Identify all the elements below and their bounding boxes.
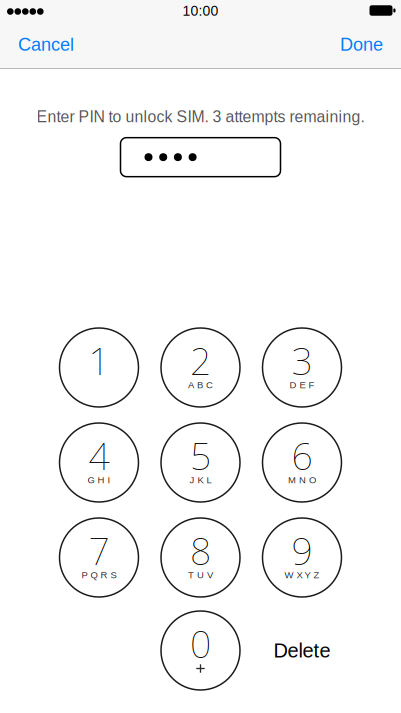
button[interactable]: 8 [161,518,240,597]
button[interactable]: 3 [262,328,341,407]
staticText: P Q R S [81,570,116,580]
button[interactable]: 9 [262,518,341,597]
staticText: Cancel [18,34,74,55]
staticText: D E F [289,380,314,390]
button[interactable]: 7 [59,518,138,597]
staticText: 0 [190,619,211,668]
staticText: W X Y Z [284,570,319,580]
staticText: 8 [190,526,211,575]
staticText: 7 [88,526,109,575]
staticText: 6 [291,431,312,480]
button[interactable]: Delete [262,611,341,690]
staticText: 2 [190,336,211,385]
staticText: 3 [291,336,312,385]
staticText: 4 [88,431,109,480]
button[interactable]: 2 [161,328,240,407]
button[interactable]: 6 [262,423,341,502]
staticText: 5 [190,431,211,480]
staticText: A B C [188,380,213,390]
staticText: J K L [189,475,211,485]
staticText: 9 [291,526,312,575]
staticText: T U V [188,570,213,580]
button[interactable]: 4 [59,423,138,502]
button[interactable]: 1 [59,328,138,407]
button[interactable]: 5 [161,423,240,502]
staticText: G H I [87,475,110,485]
button[interactable]: 0 [161,611,240,690]
staticText: 10:00 [182,3,218,19]
staticText: Delete [273,639,330,662]
staticText: Done [340,34,383,55]
staticText: Enter PIN to unlock SIM. 3 attempts rema… [36,108,364,126]
staticText: 1 [88,336,109,385]
button[interactable]: Cancel [9,20,83,68]
button[interactable]: Done [331,20,392,68]
staticText: M N O [288,475,316,485]
